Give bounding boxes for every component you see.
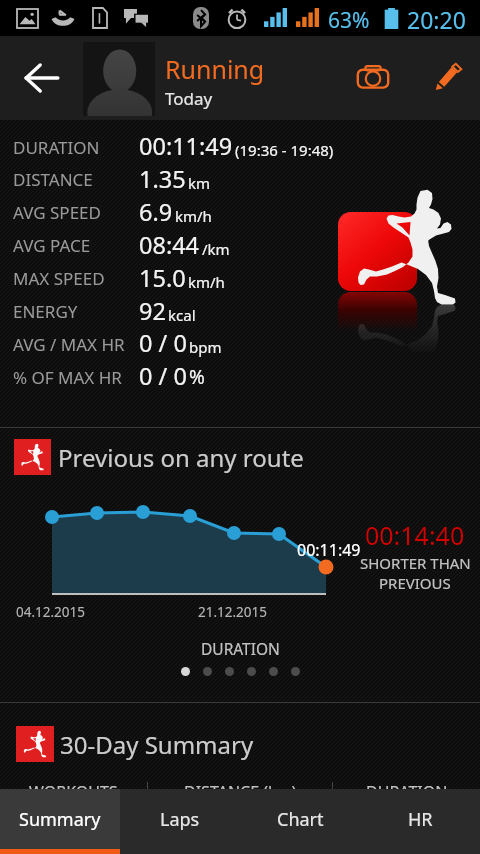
staticText: 63%	[328, 6, 370, 35]
staticText: 00:11:49	[297, 539, 361, 561]
staticText: PREVIOUS	[379, 573, 451, 593]
button[interactable]: Summary	[0, 789, 120, 854]
staticText: DURATION	[13, 136, 100, 159]
staticText: 92	[139, 295, 166, 327]
staticText: Today	[165, 87, 213, 110]
button[interactable]	[225, 667, 234, 676]
staticText: bpm	[189, 337, 222, 357]
staticText: SHORTER THAN	[360, 553, 471, 573]
staticText: AVG / MAX HR	[13, 333, 125, 356]
staticText: km/h	[175, 206, 212, 226]
staticText: 00:14:40	[365, 518, 465, 552]
staticText: 6.9	[139, 196, 173, 228]
button[interactable]: Edit	[414, 36, 480, 120]
staticText: Running	[165, 52, 265, 86]
staticText: AVG SPEED	[13, 201, 101, 224]
staticText: 0 / 0	[139, 327, 187, 359]
staticText: Previous on any route	[58, 441, 304, 474]
staticText: 1.35	[139, 163, 186, 195]
button[interactable]: Previous on any route	[14, 439, 480, 475]
staticText: DURATION	[366, 781, 448, 803]
staticText: ENERGY	[13, 300, 78, 323]
staticText: kcal	[168, 305, 196, 325]
staticText: 04.12.2015	[16, 603, 86, 621]
button[interactable]	[203, 667, 212, 676]
staticText: WORKOUTS	[29, 781, 118, 803]
staticText: /km	[202, 239, 230, 259]
staticText: Summary	[19, 807, 101, 832]
button[interactable]: Back	[0, 36, 83, 120]
staticText: 08:44	[139, 229, 200, 261]
staticText: 00:11:49	[139, 130, 233, 162]
button[interactable]	[269, 667, 278, 676]
staticText: MAX SPEED	[13, 267, 105, 290]
button[interactable]: Camera	[340, 36, 406, 120]
staticText: %	[189, 364, 205, 390]
staticText: AVG PACE	[13, 234, 91, 257]
staticText: km/h	[188, 272, 225, 292]
staticText: (19:36 - 19:48)	[235, 140, 334, 160]
button[interactable]	[291, 667, 300, 676]
button[interactable]	[247, 667, 256, 676]
staticText: 20:20	[407, 4, 466, 35]
button[interactable]: HR	[360, 789, 480, 854]
staticText: km	[188, 173, 211, 193]
staticText: 0 / 0	[139, 360, 187, 392]
staticText: 30-Day Summary	[60, 728, 254, 761]
staticText: % OF MAX HR	[13, 366, 122, 389]
staticText: 15.0	[139, 262, 186, 294]
staticText: DURATION	[201, 638, 280, 659]
staticText: 21.12.2015	[198, 603, 268, 621]
staticText: DISTANCE	[13, 168, 93, 191]
button[interactable]	[181, 667, 190, 676]
button[interactable]: Chart	[240, 789, 360, 854]
staticText: DISTANCE (km)	[184, 781, 297, 803]
staticText: Chart	[277, 807, 324, 832]
staticText: HR	[408, 807, 433, 832]
button[interactable]: 30-Day Summary	[16, 726, 480, 762]
staticText: Laps	[160, 807, 200, 832]
button[interactable]: Laps	[120, 789, 240, 854]
